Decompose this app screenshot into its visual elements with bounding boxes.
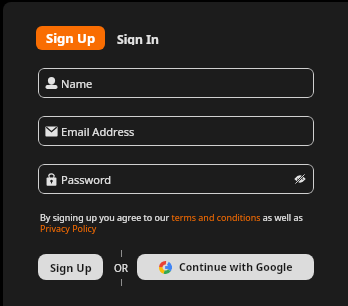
button[interactable]: Email Address <box>38 116 314 146</box>
staticText: Continue with Google <box>179 260 293 274</box>
staticText: Sign In <box>117 31 159 45</box>
button[interactable]: Name <box>38 68 314 98</box>
button[interactable]: Sign Up <box>38 254 103 280</box>
other: Show password <box>294 173 306 185</box>
button[interactable]: Password <box>38 164 314 194</box>
staticText: Sign Up <box>50 260 92 275</box>
staticText: Sign Up <box>46 29 96 47</box>
staticText: By signing up you agree to our terms and… <box>40 211 312 235</box>
staticText: Email Address <box>61 124 135 139</box>
button[interactable]: Sign In <box>105 26 165 50</box>
button[interactable]: Sign Up <box>36 26 105 50</box>
button[interactable]: Continue with Google <box>137 254 314 280</box>
staticText: OR <box>114 261 129 275</box>
staticText: Name <box>61 76 93 91</box>
staticText: Password <box>61 172 112 187</box>
